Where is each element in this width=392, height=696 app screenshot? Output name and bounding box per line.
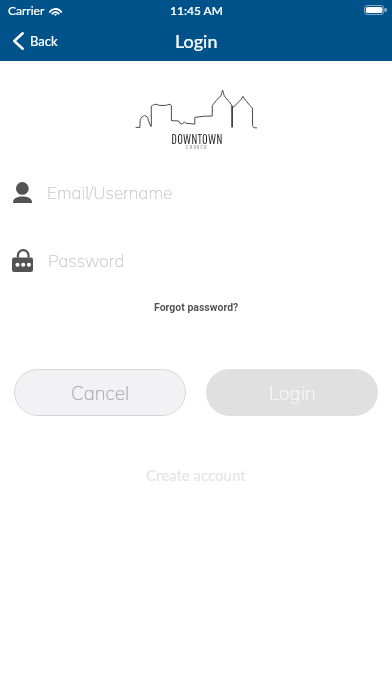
button[interactable]: Login bbox=[206, 369, 378, 416]
staticText: Cancel bbox=[71, 381, 130, 405]
staticText: Carrier bbox=[8, 3, 45, 17]
button[interactable]: Back bbox=[0, 25, 72, 57]
button[interactable]: Forgot password? bbox=[142, 296, 251, 318]
staticText: Password bbox=[48, 250, 125, 271]
other: Back bbox=[13, 32, 24, 50]
staticText: DOWNTOWN bbox=[171, 131, 223, 147]
staticText: 11:45 AM bbox=[170, 3, 223, 17]
staticText: Login bbox=[175, 30, 218, 52]
button[interactable]: Cancel bbox=[14, 369, 186, 416]
staticText: CHURCH bbox=[186, 143, 208, 150]
staticText: Forgot password? bbox=[154, 301, 239, 313]
button[interactable]: Password bbox=[0, 243, 392, 277]
staticText: Login bbox=[269, 381, 316, 405]
staticText: Create account bbox=[146, 466, 246, 484]
staticText: Email/Username bbox=[47, 182, 173, 203]
button[interactable]: Create account bbox=[134, 461, 258, 489]
button[interactable]: Email/Username bbox=[0, 175, 392, 209]
staticText: Back bbox=[30, 33, 58, 49]
